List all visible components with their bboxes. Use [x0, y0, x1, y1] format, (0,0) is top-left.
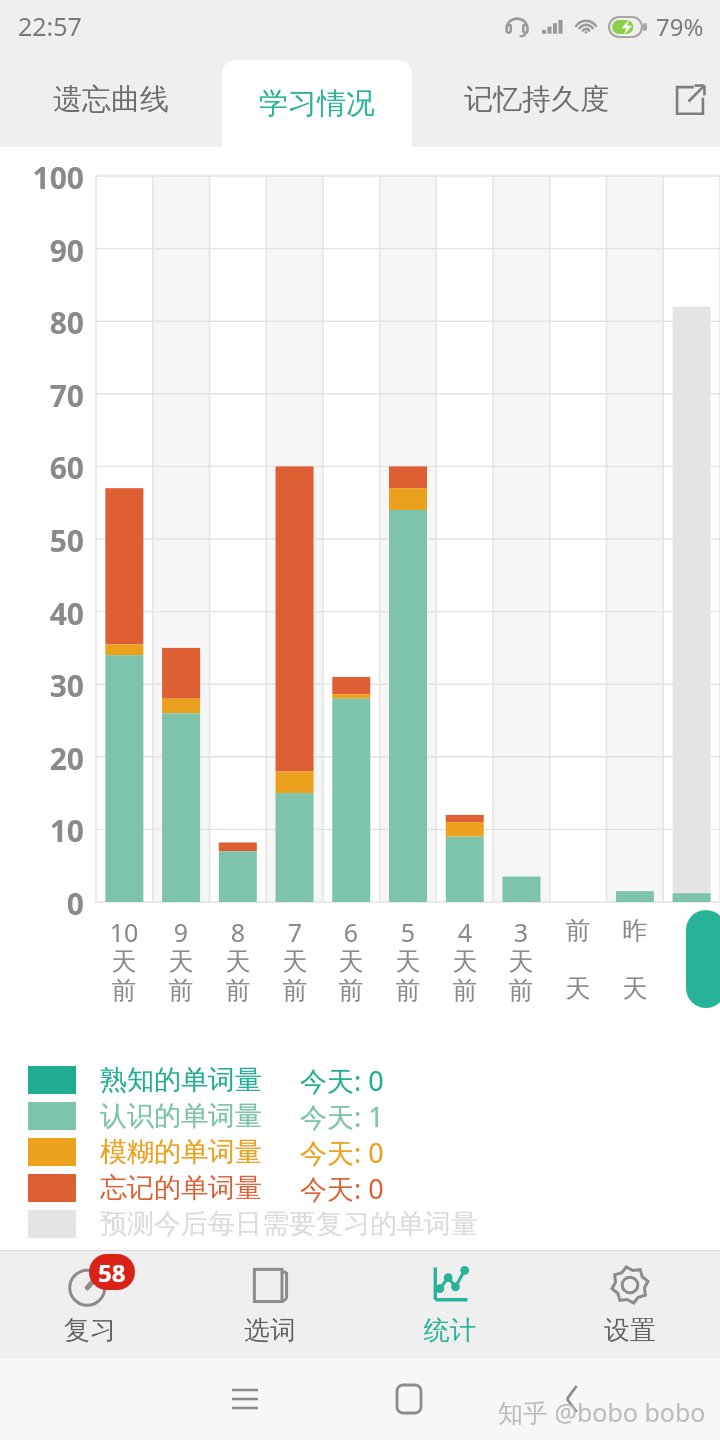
- staticText: 预测今后每日需要复习的单词量: [100, 1207, 478, 1241]
- staticText: 前 天: [550, 915, 606, 1004]
- staticText: 统计: [424, 1314, 476, 1347]
- staticText: 遗忘曲线: [53, 81, 169, 118]
- staticText: 6 天 前: [323, 915, 379, 1006]
- button[interactable]: 模糊的单词量: [28, 1134, 720, 1170]
- staticText: 90: [10, 230, 84, 271]
- staticText: 50: [10, 520, 84, 561]
- staticText: 记忆持久度: [464, 81, 609, 118]
- staticText: 今天: 1: [300, 1098, 384, 1134]
- button[interactable]: 忘记的单词量: [28, 1170, 720, 1206]
- button[interactable]: 记忆持久度: [412, 52, 660, 147]
- staticText: 忘记的单词量: [100, 1171, 288, 1205]
- button[interactable]: 遗忘曲线: [0, 52, 222, 147]
- button[interactable]: 预测今后每日需要复习的单词量: [28, 1206, 720, 1242]
- button[interactable]: Back: [491, 1358, 655, 1440]
- staticText: 今天: 0: [300, 1062, 384, 1098]
- staticText: 60: [10, 447, 84, 488]
- staticText: 0: [10, 883, 84, 924]
- button[interactable]: Menu: [163, 1358, 327, 1440]
- button[interactable]: 统计: [360, 1250, 540, 1358]
- staticText: 100: [10, 157, 84, 198]
- staticText: 40: [10, 593, 84, 634]
- staticText: 今天: 0: [300, 1134, 384, 1170]
- button[interactable]: 认识的单词量: [28, 1098, 720, 1134]
- staticText: 3 天 前: [493, 915, 549, 1006]
- staticText: 8 天 前: [210, 915, 266, 1006]
- staticText: 30: [10, 665, 84, 706]
- button[interactable]: 学习情况: [222, 60, 412, 147]
- staticText: 5 天 前: [380, 915, 436, 1006]
- staticText: 70: [10, 375, 84, 416]
- button[interactable]: 分享: [660, 52, 720, 147]
- staticText: 认识的单词量: [100, 1099, 288, 1133]
- staticText: 22:57: [18, 9, 82, 43]
- staticText: 9 天 前: [153, 915, 209, 1006]
- button[interactable]: Home: [327, 1358, 491, 1440]
- staticText: 学习情况: [259, 85, 375, 122]
- staticText: 模糊的单词量: [100, 1135, 288, 1169]
- staticText: 80: [10, 302, 84, 343]
- staticText: 熟知的单词量: [100, 1063, 288, 1097]
- button[interactable]: 选词: [180, 1250, 360, 1358]
- staticText: 选词: [244, 1314, 296, 1347]
- button[interactable]: 今天: [686, 910, 720, 1008]
- staticText: 复习: [64, 1314, 116, 1347]
- staticText: 79%: [656, 10, 704, 43]
- staticText: 10: [10, 810, 84, 851]
- staticText: 设置: [604, 1314, 656, 1347]
- staticText: 10 天 前: [96, 915, 152, 1006]
- staticText: 今天: 0: [300, 1170, 384, 1206]
- staticText: 知乎 @bobo bobo: [498, 1395, 706, 1429]
- staticText: 7 天 前: [267, 915, 323, 1006]
- button[interactable]: 熟知的单词量: [28, 1062, 720, 1098]
- staticText: 58: [98, 1256, 126, 1289]
- staticText: 20: [10, 738, 84, 779]
- button[interactable]: 设置: [540, 1250, 720, 1358]
- staticText: 4 天 前: [437, 915, 493, 1006]
- button[interactable]: 58: [0, 1250, 180, 1358]
- staticText: 昨 天: [607, 915, 663, 1004]
